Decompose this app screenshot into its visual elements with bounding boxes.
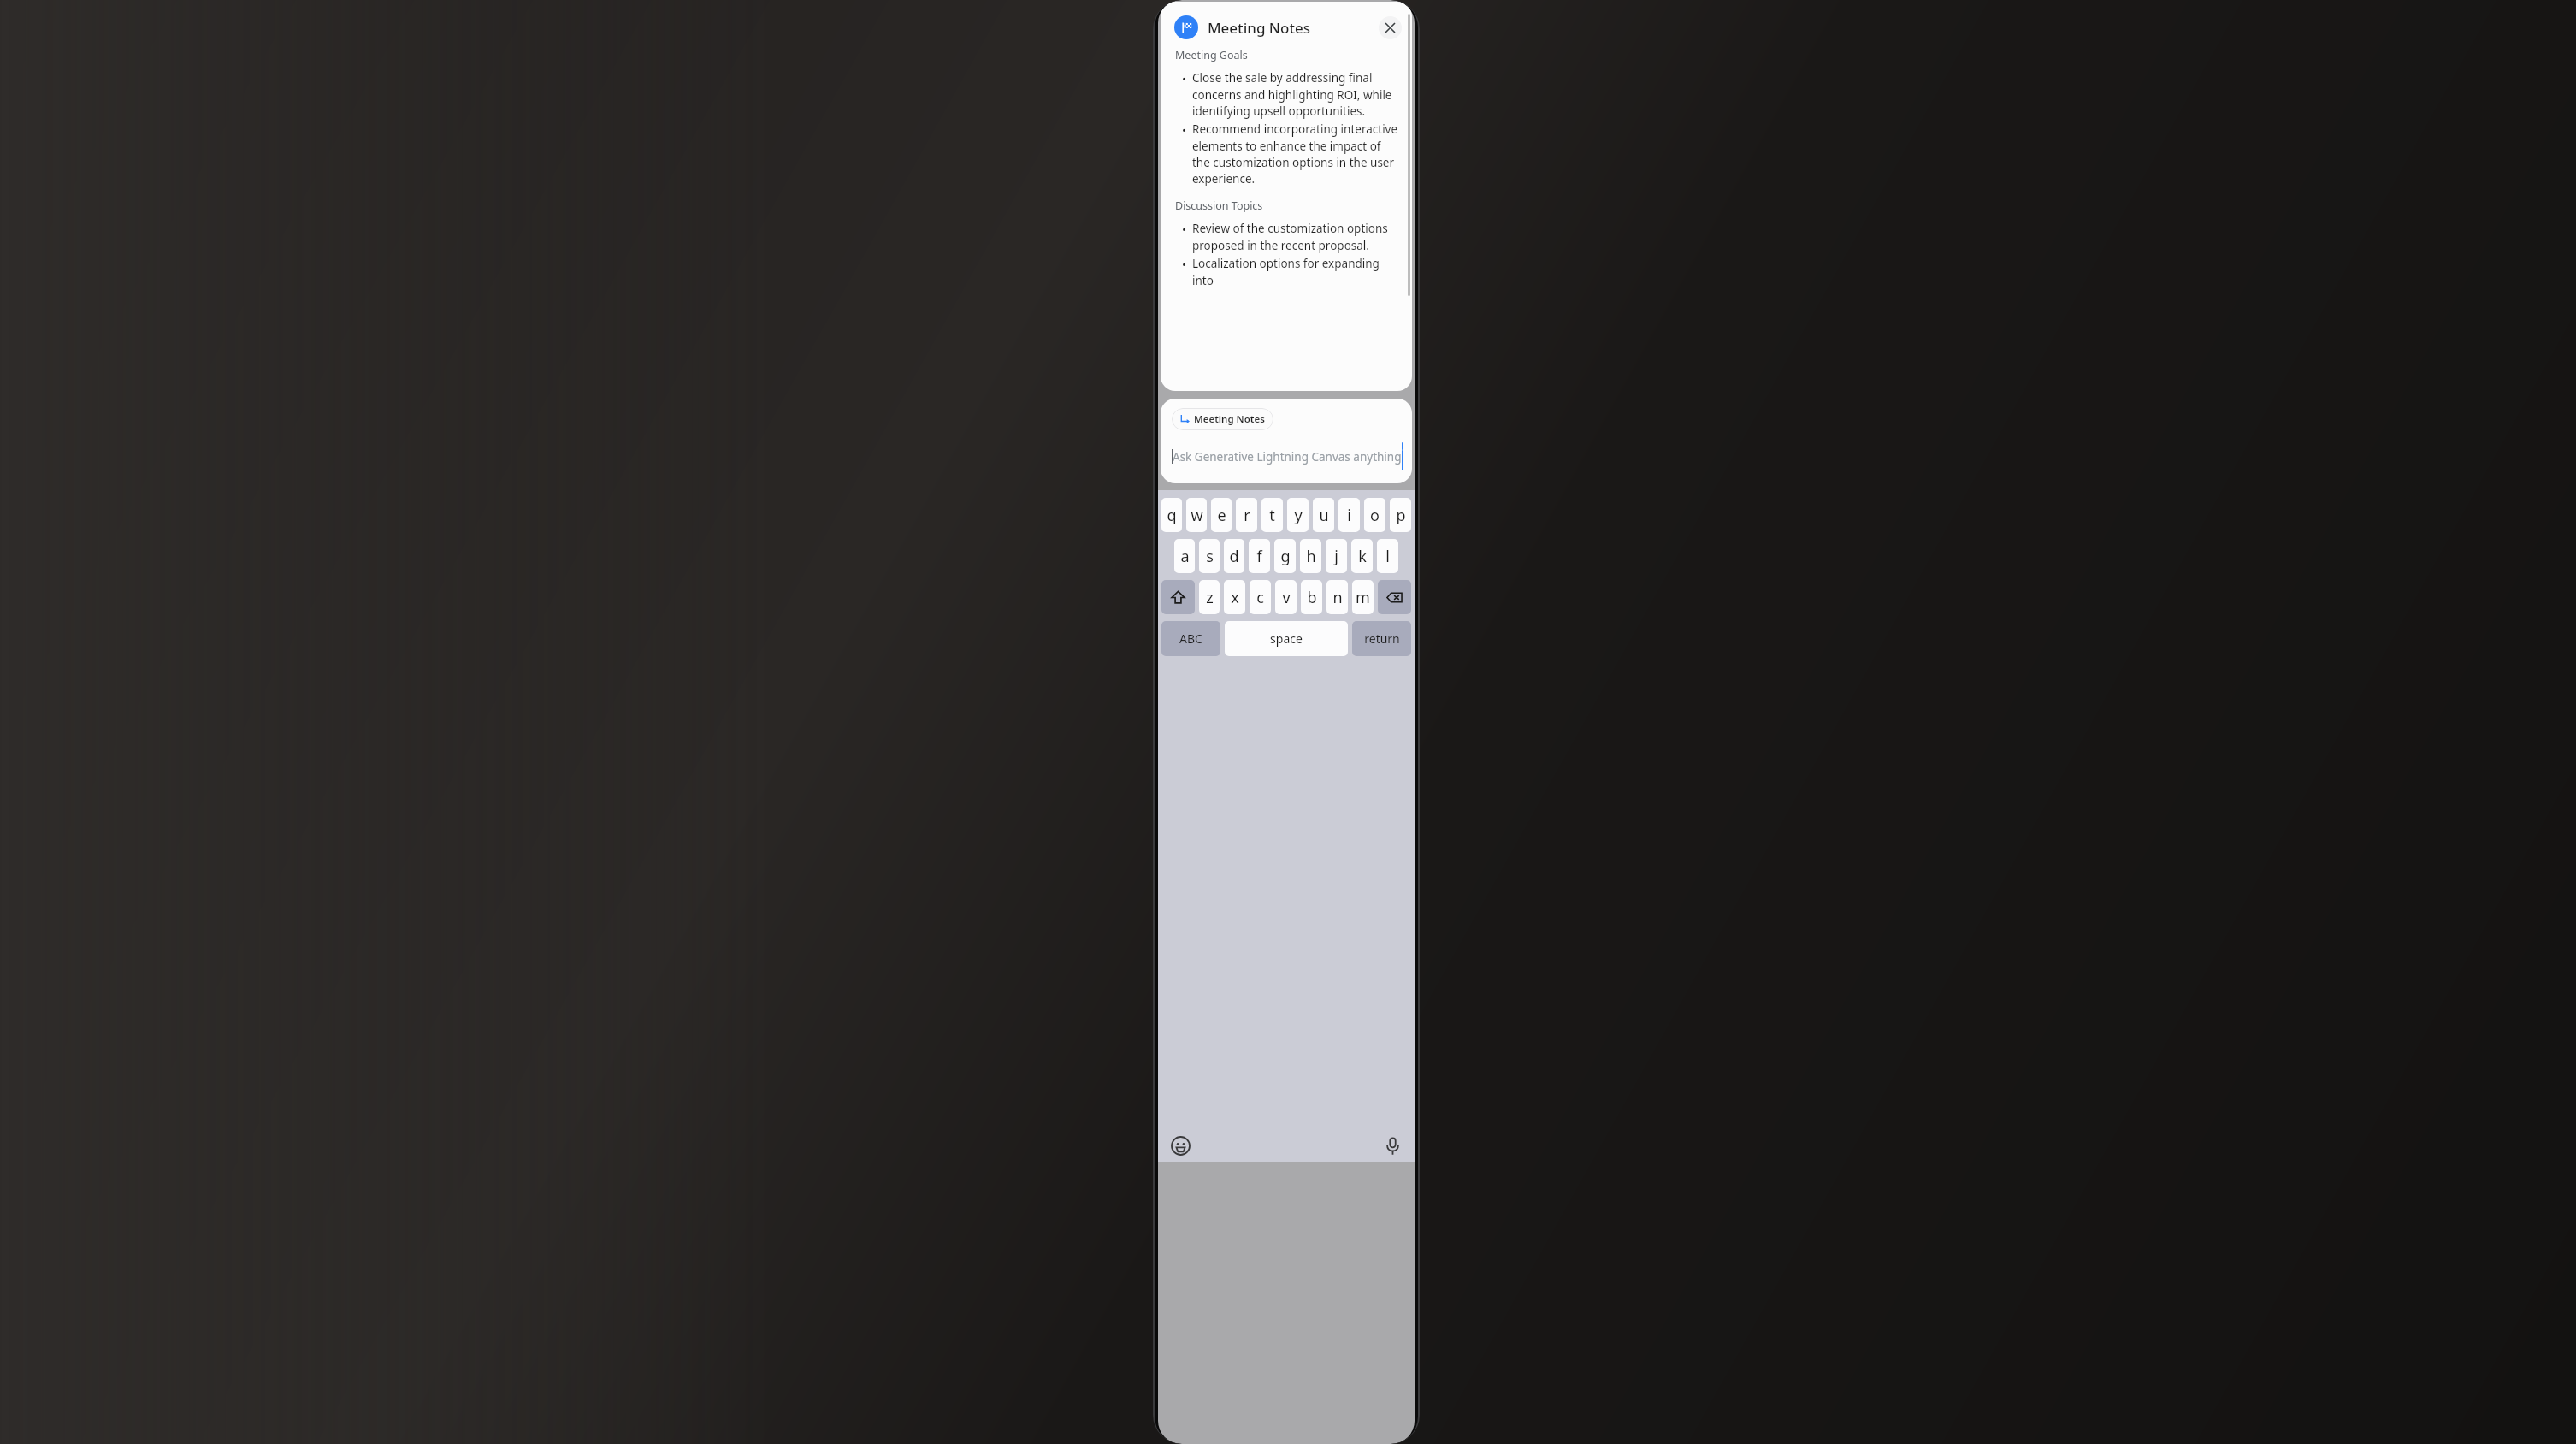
staticText: m — [1356, 587, 1370, 608]
button[interactable]: i — [1338, 498, 1360, 532]
button[interactable]: space — [1225, 621, 1348, 656]
staticText: k — [1358, 546, 1367, 567]
button[interactable]: Voice input — [1381, 1134, 1403, 1157]
button[interactable]: k — [1351, 539, 1373, 573]
staticText: Meeting Notes — [1208, 18, 1310, 38]
staticText: y — [1294, 505, 1303, 526]
staticText: • — [1182, 71, 1186, 86]
button[interactable]: o — [1364, 498, 1385, 532]
staticText: a — [1180, 546, 1190, 567]
button[interactable]: Send — [1402, 442, 1403, 470]
staticText: x — [1231, 587, 1239, 608]
staticText: return — [1364, 630, 1400, 647]
button[interactable]: s — [1199, 539, 1220, 573]
staticText: s — [1206, 546, 1214, 567]
staticText: Discussion Topics — [1175, 198, 1263, 213]
staticText: j — [1334, 546, 1338, 567]
staticText: p — [1396, 505, 1406, 526]
staticText: n — [1332, 587, 1343, 608]
staticText: i — [1347, 505, 1351, 526]
staticText: b — [1307, 587, 1317, 608]
staticText: q — [1167, 505, 1177, 526]
staticText: g — [1280, 546, 1291, 567]
button[interactable]: Backspace — [1378, 580, 1411, 614]
button[interactable]: d — [1224, 539, 1244, 573]
button[interactable]: n — [1326, 580, 1348, 614]
staticText: w — [1191, 505, 1203, 526]
staticText: Meeting Goals — [1175, 48, 1248, 62]
button[interactable]: Emoji — [1169, 1134, 1191, 1157]
button[interactable]: p — [1390, 498, 1411, 532]
staticText: c — [1256, 587, 1264, 608]
staticText: t — [1269, 505, 1275, 526]
staticText: z — [1206, 587, 1214, 608]
button[interactable]: u — [1313, 498, 1334, 532]
staticText: Ask Generative Lightning Canvas anything — [1173, 449, 1402, 465]
button[interactable]: c — [1250, 580, 1271, 614]
staticText: o — [1370, 505, 1380, 526]
staticText: d — [1229, 546, 1239, 567]
button[interactable]: y — [1287, 498, 1309, 532]
staticText: v — [1282, 587, 1291, 608]
staticText: e — [1217, 505, 1226, 526]
button[interactable]: Meeting Notes — [1172, 408, 1273, 430]
staticText: ABC — [1179, 630, 1202, 647]
staticText: r — [1244, 505, 1250, 526]
button[interactable]: g — [1274, 539, 1296, 573]
button[interactable]: x — [1224, 580, 1245, 614]
staticText: Meeting Notes — [1194, 412, 1265, 426]
staticText: • — [1182, 122, 1186, 138]
staticText: • — [1182, 222, 1186, 237]
button[interactable]: return — [1352, 621, 1411, 656]
button[interactable]: t — [1261, 498, 1283, 532]
staticText: Recommend incorporating interactive elem… — [1192, 121, 1400, 186]
staticText: l — [1385, 546, 1390, 567]
button[interactable]: ABC — [1161, 621, 1220, 656]
staticText: h — [1306, 546, 1316, 567]
button[interactable]: Shift — [1161, 580, 1195, 614]
staticText: Review of the customization options prop… — [1192, 221, 1400, 253]
button[interactable]: b — [1301, 580, 1322, 614]
button[interactable]: w — [1186, 498, 1207, 532]
button[interactable]: h — [1300, 539, 1321, 573]
button[interactable]: r — [1236, 498, 1257, 532]
button[interactable]: Close — [1379, 16, 1402, 39]
staticText: Close the sale by addressing final conce… — [1192, 70, 1400, 119]
button[interactable]: v — [1275, 580, 1297, 614]
button[interactable]: z — [1199, 580, 1220, 614]
staticText: u — [1319, 505, 1329, 526]
button[interactable]: a — [1174, 539, 1195, 573]
staticText: • — [1182, 257, 1186, 272]
button[interactable]: q — [1161, 498, 1182, 532]
button[interactable]: f — [1249, 539, 1270, 573]
button[interactable]: m — [1352, 580, 1374, 614]
staticText: space — [1270, 630, 1303, 647]
button[interactable]: e — [1211, 498, 1232, 532]
staticText: Localization options for expanding into — [1192, 256, 1400, 288]
button[interactable]: j — [1326, 539, 1347, 573]
staticText: f — [1256, 546, 1262, 567]
button[interactable]: l — [1377, 539, 1398, 573]
